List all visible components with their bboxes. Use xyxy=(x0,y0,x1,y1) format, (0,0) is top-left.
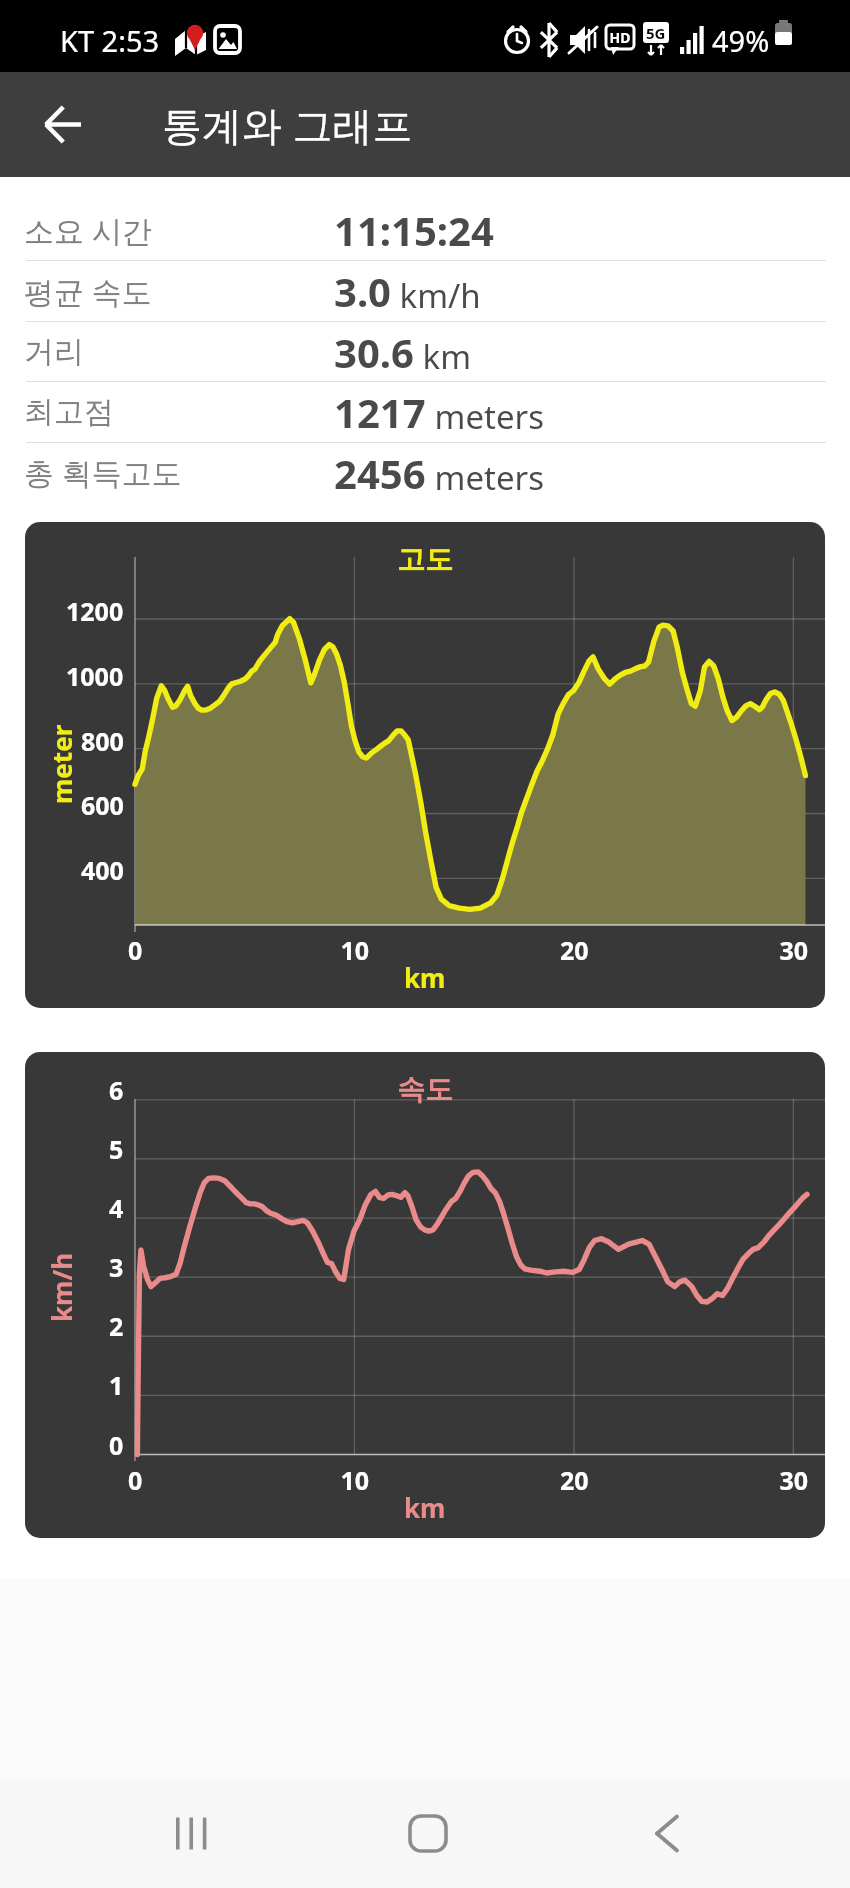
staticText: km xyxy=(414,334,472,379)
staticText: 1217 xyxy=(334,385,426,439)
staticText: 2456 xyxy=(334,446,426,500)
staticText: 평균 속도 xyxy=(24,271,152,312)
staticText: 최고점 xyxy=(24,393,114,431)
staticText: 통계와 그래프 xyxy=(162,97,413,152)
staticText: 30.6 xyxy=(334,325,414,379)
button[interactable]: Back xyxy=(0,72,125,177)
staticText: 소요 시간 xyxy=(24,210,152,251)
staticText: 거리 xyxy=(24,333,84,371)
button[interactable]: Recent apps xyxy=(0,1780,285,1888)
button[interactable]: Home xyxy=(285,1780,570,1888)
staticText: 3.0 xyxy=(334,264,391,318)
button[interactable]: Back xyxy=(570,1780,850,1888)
staticText: km/h xyxy=(391,273,481,318)
staticText: 총 획득고도 xyxy=(24,452,182,493)
staticText: 11:15:24 xyxy=(334,203,494,257)
staticText: meters xyxy=(426,455,545,500)
staticText: meters xyxy=(426,394,545,439)
